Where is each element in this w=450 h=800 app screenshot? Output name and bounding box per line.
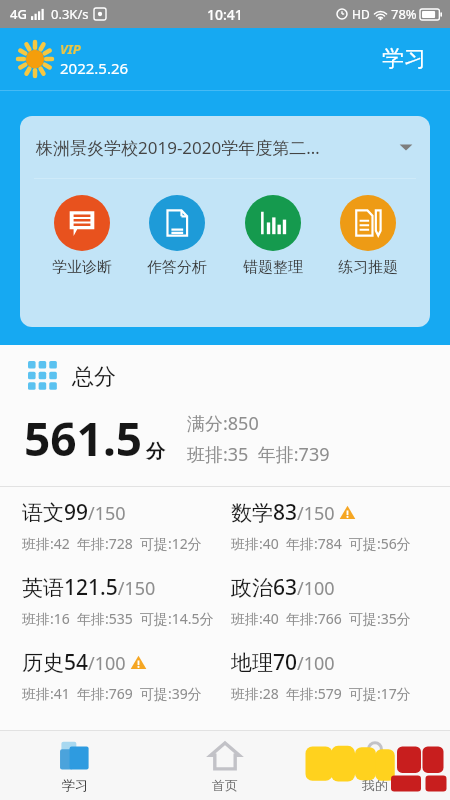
- staticText: 地理70/100: [231, 648, 335, 677]
- button[interactable]: 首页: [150, 730, 300, 800]
- staticText: 政治63/100: [231, 573, 335, 602]
- staticText: 练习推题: [338, 258, 398, 277]
- staticText: 班排:16 年排:535 可提:14.5分: [22, 609, 214, 628]
- staticText: HD: [352, 6, 370, 22]
- staticText: 班排:35 年排:739: [187, 442, 330, 467]
- staticText: 学习: [382, 45, 426, 73]
- button[interactable]: 学习: [0, 730, 150, 800]
- button[interactable]: 历史54/100: [0, 637, 450, 712]
- staticText: 我的: [362, 777, 388, 793]
- other: 展开: [398, 139, 414, 155]
- staticText: 10:41: [207, 5, 243, 24]
- staticText: 错题整理: [243, 258, 303, 277]
- button[interactable]: 学业诊断: [48, 193, 116, 279]
- button[interactable]: 错题整理: [239, 193, 307, 279]
- button[interactable]: 练习推题: [334, 193, 402, 279]
- staticText: 总分: [72, 363, 116, 391]
- button[interactable]: 学习: [376, 41, 432, 77]
- button[interactable]: 语文99/150: [0, 487, 450, 562]
- staticText: 满分:850: [187, 411, 259, 436]
- staticText: 561.5: [24, 407, 143, 470]
- staticText: 班排:40 年排:784 可提:56分: [231, 534, 411, 553]
- staticText: 英语121.5/150: [22, 573, 156, 602]
- staticText: 78%: [391, 5, 417, 23]
- staticText: 数学83/150: [231, 498, 335, 527]
- button[interactable]: 我的: [300, 730, 450, 800]
- staticText: 0.3K/s: [51, 5, 89, 23]
- staticText: 作答分析: [147, 258, 207, 277]
- staticText: 株洲景炎学校2019-2020学年度第二…: [36, 136, 398, 159]
- staticText: 首页: [212, 777, 238, 793]
- staticText: 语文99/150: [22, 498, 126, 527]
- staticText: 学习: [62, 777, 88, 793]
- button[interactable]: 作答分析: [143, 193, 211, 279]
- staticText: 4G: [10, 5, 27, 23]
- staticText: 2022.5.26: [60, 58, 129, 78]
- staticText: 班排:41 年排:769 可提:39分: [22, 684, 202, 703]
- staticText: 班排:28 年排:579 可提:17分: [231, 684, 411, 703]
- staticText: 班排:40 年排:766 可提:35分: [231, 609, 411, 628]
- other: 警告: [130, 654, 147, 671]
- staticText: 分: [146, 440, 165, 464]
- staticText: 班排:42 年排:728 可提:12分: [22, 534, 202, 553]
- other: 警告: [339, 504, 356, 521]
- button[interactable]: 株洲景炎学校2019-2020学年度第二…: [20, 116, 430, 178]
- staticText: 学业诊断: [52, 258, 112, 277]
- button[interactable]: 英语121.5/150: [0, 562, 450, 637]
- staticText: 历史54/100: [22, 648, 126, 677]
- staticText: VIP: [60, 40, 81, 58]
